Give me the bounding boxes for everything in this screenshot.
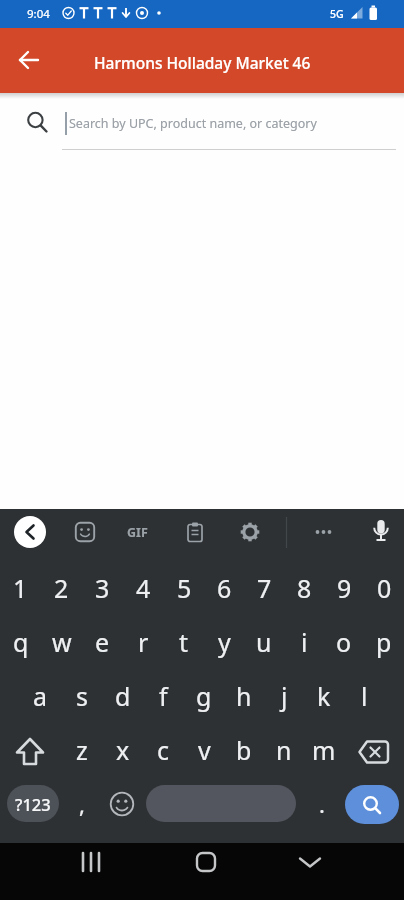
staticText: m xyxy=(312,733,336,767)
button[interactable]: 5 xyxy=(164,563,204,617)
button[interactable]: 9 xyxy=(324,563,364,617)
button[interactable] xyxy=(0,93,404,158)
button[interactable] xyxy=(236,518,264,546)
button[interactable]: v xyxy=(184,725,224,779)
button[interactable]: u xyxy=(244,617,284,671)
button[interactable] xyxy=(288,840,332,884)
staticText: 5 xyxy=(177,571,192,605)
button[interactable] xyxy=(343,725,404,779)
button[interactable]: 0 xyxy=(364,563,404,617)
button[interactable] xyxy=(8,39,50,81)
staticText: 6 xyxy=(217,571,232,605)
button[interactable]: q xyxy=(0,617,41,671)
button[interactable]: 2 xyxy=(41,563,82,617)
staticText: u xyxy=(256,625,272,659)
staticText: x xyxy=(116,733,130,767)
button[interactable]: e xyxy=(82,617,123,671)
staticText: b xyxy=(236,733,252,767)
staticText: 4 xyxy=(136,571,151,605)
staticText: q xyxy=(13,625,29,659)
button[interactable] xyxy=(0,725,60,779)
staticText: j xyxy=(281,679,288,713)
staticText: k xyxy=(317,679,331,713)
button[interactable]: w xyxy=(41,617,82,671)
staticText: o xyxy=(336,625,352,659)
button[interactable]: n xyxy=(264,725,304,779)
staticText: t xyxy=(179,625,189,659)
button[interactable] xyxy=(146,785,296,822)
button[interactable]: b xyxy=(224,725,264,779)
button[interactable]: j xyxy=(264,671,304,725)
staticText: ?123 xyxy=(15,793,51,815)
button[interactable]: a xyxy=(20,671,61,725)
staticText: h xyxy=(236,679,252,713)
button[interactable]: 4 xyxy=(123,563,164,617)
button[interactable]: 8 xyxy=(284,563,324,617)
button[interactable]: l xyxy=(344,671,384,725)
staticText: 3 xyxy=(95,571,110,605)
staticText: p xyxy=(376,625,392,659)
button[interactable]: GIF xyxy=(117,516,157,548)
button[interactable]: m xyxy=(304,725,344,779)
staticText: 5G xyxy=(330,7,344,21)
staticText: 9 xyxy=(337,571,352,605)
button[interactable]: 1 xyxy=(0,563,41,617)
button[interactable]: x xyxy=(102,725,143,779)
button[interactable]: o xyxy=(324,617,364,671)
button[interactable]: f xyxy=(143,671,184,725)
button[interactable]: t xyxy=(164,617,204,671)
button[interactable]: y xyxy=(204,617,244,671)
button[interactable] xyxy=(345,785,399,824)
staticText: Search by UPC, product name, or category xyxy=(69,115,317,132)
staticText: , xyxy=(79,789,85,819)
button[interactable]: ?123 xyxy=(7,785,59,822)
button[interactable]: i xyxy=(284,617,324,671)
button[interactable]: z xyxy=(61,725,102,779)
button[interactable] xyxy=(365,516,397,548)
staticText: i xyxy=(301,625,308,659)
staticText: 1 xyxy=(13,571,28,605)
staticText: f xyxy=(159,679,168,713)
button[interactable]: . xyxy=(302,779,342,829)
button[interactable]: s xyxy=(61,671,102,725)
button[interactable] xyxy=(306,516,338,548)
button[interactable]: g xyxy=(184,671,224,725)
button[interactable] xyxy=(14,516,46,548)
staticText: w xyxy=(52,625,72,659)
staticText: 7 xyxy=(257,571,272,605)
button[interactable]: h xyxy=(224,671,264,725)
staticText: c xyxy=(157,733,170,767)
button[interactable]: r xyxy=(123,617,164,671)
staticText: . xyxy=(319,789,325,819)
staticText: GIF xyxy=(127,524,148,541)
staticText: 2 xyxy=(54,571,69,605)
staticText: 8 xyxy=(297,571,312,605)
button[interactable] xyxy=(71,518,99,546)
button[interactable] xyxy=(184,840,228,884)
button[interactable]: , xyxy=(62,779,102,829)
button[interactable]: c xyxy=(143,725,184,779)
button[interactable]: 3 xyxy=(82,563,123,617)
button[interactable] xyxy=(69,840,113,884)
staticText: v xyxy=(198,733,211,767)
staticText: 9:04 xyxy=(27,6,50,22)
staticText: l xyxy=(361,679,368,713)
staticText: Harmons Holladay Market 46 xyxy=(94,52,311,73)
staticText: e xyxy=(95,625,110,659)
staticText: 0 xyxy=(377,571,392,605)
button[interactable]: 7 xyxy=(244,563,284,617)
button[interactable]: 6 xyxy=(204,563,244,617)
staticText: n xyxy=(276,733,292,767)
button[interactable]: p xyxy=(364,617,404,671)
button[interactable]: d xyxy=(102,671,143,725)
staticText: g xyxy=(196,679,212,713)
staticText: d xyxy=(115,679,131,713)
button[interactable] xyxy=(102,779,142,829)
button[interactable]: k xyxy=(304,671,344,725)
staticText: z xyxy=(76,733,88,767)
button[interactable] xyxy=(181,518,209,546)
staticText: s xyxy=(76,679,88,713)
staticText: r xyxy=(138,625,149,659)
staticText: a xyxy=(33,679,48,713)
staticText: y xyxy=(218,625,231,659)
